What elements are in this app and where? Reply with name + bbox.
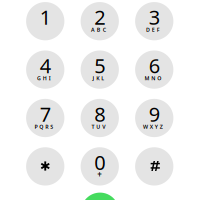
- staticText: 1: [40, 4, 51, 30]
- staticText: MNO: [144, 75, 164, 82]
- button[interactable]: 0 plus: [81, 147, 119, 185]
- staticText: TUV: [91, 123, 108, 130]
- staticText: GHI: [37, 75, 54, 82]
- button[interactable]: 4 G H I: [26, 50, 64, 89]
- staticText: +: [97, 169, 102, 180]
- staticText: 8: [94, 101, 105, 127]
- staticText: 2: [94, 4, 105, 30]
- button[interactable]: Call: [81, 193, 119, 200]
- button[interactable]: star: [26, 147, 64, 185]
- staticText: 7: [40, 101, 51, 127]
- staticText: WXYZ: [143, 123, 165, 130]
- button[interactable]: number sign: [135, 147, 173, 185]
- staticText: 3: [149, 4, 160, 30]
- staticText: ABC: [91, 26, 109, 33]
- button[interactable]: 6 M N O: [135, 50, 173, 89]
- staticText: 0: [94, 149, 105, 176]
- staticText: DEF: [146, 26, 163, 33]
- staticText: JKL: [92, 75, 107, 82]
- staticText: PQRS: [34, 123, 56, 130]
- button[interactable]: 8 T U V: [81, 99, 119, 137]
- button[interactable]: 5 J K L: [81, 50, 119, 89]
- button[interactable]: 2 A B C: [81, 2, 119, 40]
- button[interactable]: 7 P Q R S: [26, 99, 64, 137]
- staticText: 5: [94, 52, 105, 79]
- button[interactable]: 1: [26, 2, 64, 40]
- button[interactable]: 3 D E F: [135, 2, 173, 40]
- staticText: 6: [149, 52, 160, 79]
- staticText: 4: [40, 52, 51, 79]
- staticText: 9: [149, 101, 160, 127]
- button[interactable]: 9 W X Y Z: [135, 99, 173, 137]
